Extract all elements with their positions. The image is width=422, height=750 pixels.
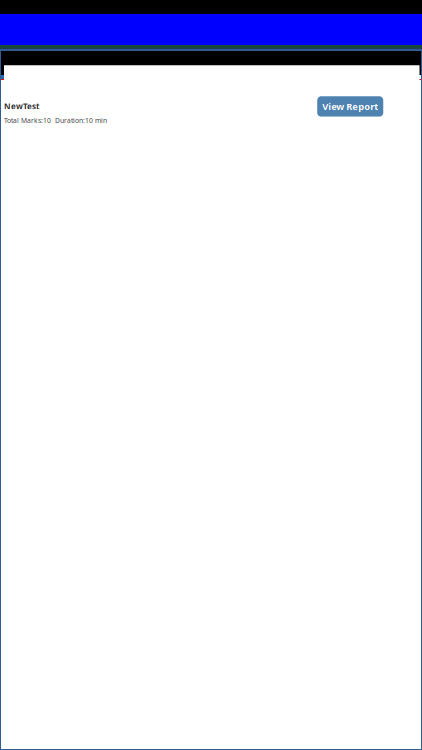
- staticText: View Report: [322, 100, 378, 113]
- staticText: PRACTICE: [296, 59, 333, 70]
- button[interactable]: PRACTICE: [208, 50, 422, 79]
- button[interactable]: EXAMINATION: [0, 50, 208, 79]
- staticText: NewTest: [4, 101, 39, 112]
- staticText: Total Marks:10 Duration:10 min: [4, 116, 107, 125]
- staticText: EXAMINATION: [74, 59, 133, 70]
